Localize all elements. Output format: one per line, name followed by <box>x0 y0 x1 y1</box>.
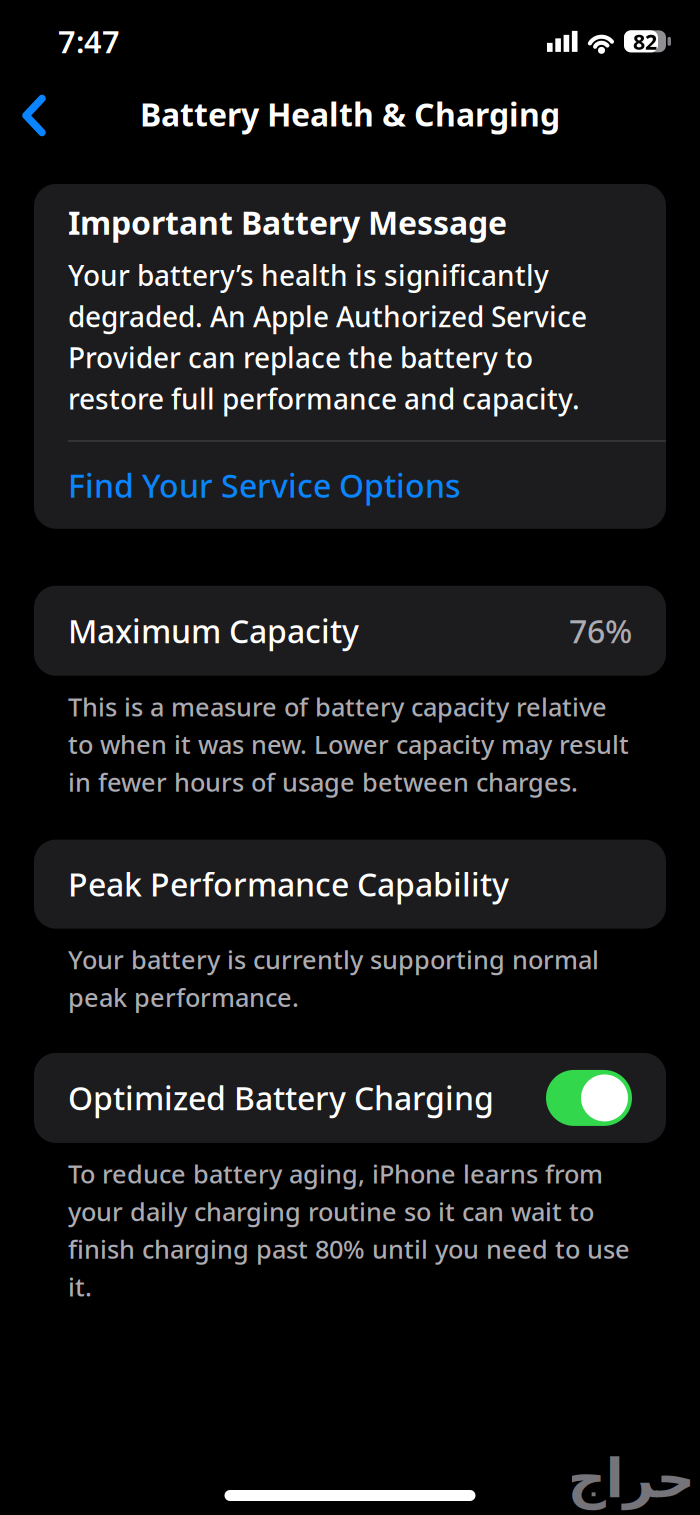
staticText: 82 <box>633 27 657 55</box>
staticText: حراج <box>567 1448 694 1509</box>
staticText: Battery Health & Charging <box>140 93 560 135</box>
staticText: This is a measure of battery capacity re… <box>68 690 629 799</box>
staticText: Your battery is currently supporting nor… <box>68 943 599 1014</box>
button[interactable]: Maximum Capacity <box>34 586 666 676</box>
button[interactable]: Peak Performance Capability <box>34 840 666 929</box>
staticText: To reduce battery aging, iPhone learns f… <box>68 1157 630 1303</box>
staticText: Find Your Service Options <box>68 464 461 506</box>
staticText: 7:47 <box>58 21 120 62</box>
staticText: Important Battery Message <box>68 201 507 243</box>
staticText: Optimized Battery Charging <box>68 1077 494 1119</box>
staticText: Peak Performance Capability <box>68 863 509 905</box>
staticText: 76% <box>569 609 632 652</box>
staticText: Maximum Capacity <box>68 609 359 652</box>
button[interactable]: Back <box>0 79 71 148</box>
button[interactable]: Optimized Battery Charging <box>546 1070 632 1126</box>
staticText: Your battery’s health is significantly d… <box>68 256 587 417</box>
button[interactable]: Find Your Service Options <box>68 442 632 529</box>
